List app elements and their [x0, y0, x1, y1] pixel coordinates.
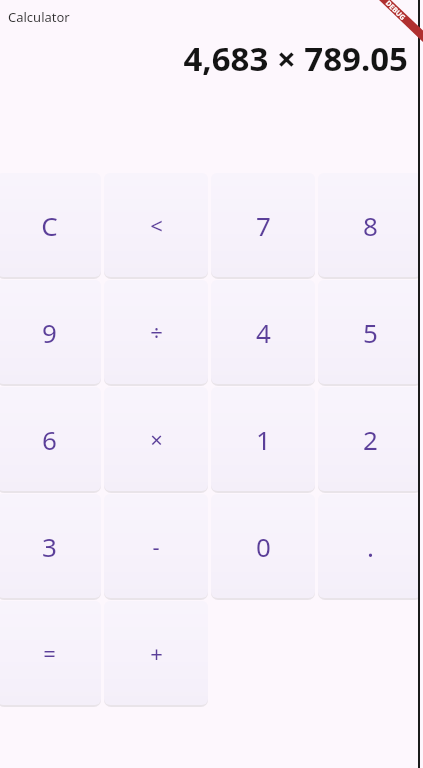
button[interactable]: 4 — [211, 280, 315, 384]
staticText: . — [367, 529, 374, 564]
button[interactable]: < — [104, 173, 208, 277]
staticText: 8 — [363, 208, 378, 243]
staticText: C — [41, 208, 58, 243]
staticText: 3 — [42, 529, 57, 564]
staticText: 6 — [42, 422, 57, 457]
staticText: 0 — [256, 529, 271, 564]
staticText: = — [43, 638, 56, 668]
button[interactable]: 7 — [211, 173, 315, 277]
button[interactable]: 3 — [0, 494, 101, 598]
staticText: 4,683 × 789.05 — [183, 36, 408, 81]
staticText: + — [150, 638, 163, 668]
staticText: - — [152, 531, 160, 561]
button[interactable]: 6 — [0, 387, 101, 491]
staticText: 1 — [256, 422, 271, 457]
button[interactable]: 8 — [318, 173, 422, 277]
staticText: < — [150, 210, 163, 240]
staticText: 9 — [42, 315, 57, 350]
button[interactable]: × — [104, 387, 208, 491]
button[interactable]: - — [104, 494, 208, 598]
staticText: DEBUG — [383, 0, 408, 23]
button[interactable]: 1 — [211, 387, 315, 491]
button[interactable]: . — [318, 494, 422, 598]
staticText: 4 — [256, 315, 271, 350]
staticText: ÷ — [150, 317, 163, 347]
button[interactable]: 5 — [318, 280, 422, 384]
button[interactable]: = — [0, 601, 101, 705]
staticText: 5 — [363, 315, 378, 350]
button[interactable]: ÷ — [104, 280, 208, 384]
button[interactable]: 2 — [318, 387, 422, 491]
button[interactable]: C — [0, 173, 101, 277]
button[interactable]: 9 — [0, 280, 101, 384]
staticText: Calculator — [8, 8, 70, 26]
staticText: 2 — [363, 422, 378, 457]
staticText: 7 — [256, 208, 271, 243]
button[interactable]: 0 — [211, 494, 315, 598]
button[interactable]: + — [104, 601, 208, 705]
staticText: × — [150, 424, 163, 454]
